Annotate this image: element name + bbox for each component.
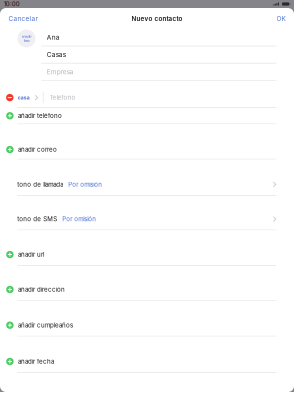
staticText: Empresa bbox=[47, 68, 74, 76]
button[interactable]: tono de SMS bbox=[0, 209, 294, 230]
button[interactable]: casa bbox=[0, 88, 294, 107]
staticText: añadir dirección bbox=[18, 286, 65, 293]
staticText: OK bbox=[277, 15, 286, 22]
staticText: añadir url bbox=[18, 251, 44, 258]
staticText: Nuevo contacto bbox=[131, 15, 182, 22]
staticText: Por omisión bbox=[68, 181, 102, 188]
staticText: añadir correo bbox=[18, 146, 57, 153]
staticText: Teléfono bbox=[50, 94, 76, 101]
staticText: casa bbox=[18, 94, 30, 101]
staticText: Por omisión bbox=[62, 215, 96, 223]
staticText: añadir cumpleaños bbox=[18, 321, 73, 329]
button[interactable]: añadir url bbox=[0, 244, 294, 265]
button[interactable]: tono de llamada bbox=[0, 174, 294, 195]
button[interactable]: añadir foto bbox=[17, 29, 35, 47]
button[interactable]: añadir correo bbox=[0, 140, 294, 159]
staticText: añadir fecha bbox=[18, 358, 54, 365]
staticText: añadir teléfono bbox=[18, 112, 62, 119]
staticText: Ana bbox=[47, 33, 60, 41]
staticText: 10:00 bbox=[4, 0, 20, 8]
button[interactable]: OK bbox=[271, 8, 294, 29]
button[interactable]: añadir fecha bbox=[0, 351, 294, 372]
button[interactable]: Cancelar bbox=[0, 8, 43, 29]
staticText: Casas bbox=[47, 51, 66, 58]
staticText: tono de llamada bbox=[17, 181, 63, 188]
staticText: tono de SMS bbox=[17, 215, 57, 223]
button[interactable]: añadir teléfono bbox=[0, 108, 294, 123]
button[interactable]: añadir dirección bbox=[0, 279, 294, 300]
staticText: foto bbox=[23, 38, 29, 43]
staticText: Cancelar bbox=[8, 15, 37, 22]
button[interactable]: añadir cumpleaños bbox=[0, 315, 294, 336]
staticText: añadir bbox=[21, 34, 31, 38]
